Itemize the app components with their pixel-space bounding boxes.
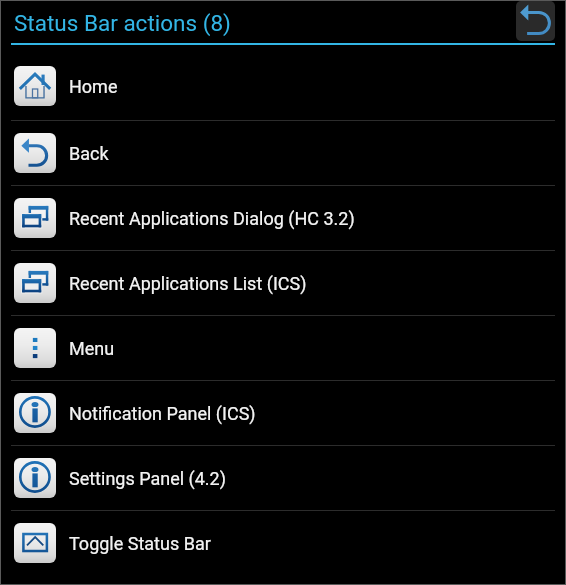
button[interactable]: Undo bbox=[516, 1, 555, 41]
staticText: Status Bar actions (8) bbox=[14, 10, 231, 36]
staticText: Home bbox=[69, 76, 118, 97]
staticText: Settings Panel (4.2) bbox=[69, 468, 226, 489]
button[interactable]: Notification Panel (ICS) bbox=[1, 381, 565, 445]
button[interactable]: Settings Panel (4.2) bbox=[1, 446, 565, 510]
staticText: Notification Panel (ICS) bbox=[69, 403, 256, 424]
button[interactable]: Home bbox=[1, 52, 565, 120]
button[interactable]: Recent Applications List (ICS) bbox=[1, 251, 565, 315]
button[interactable]: Menu bbox=[1, 316, 565, 380]
staticText: Menu bbox=[69, 338, 115, 359]
staticText: Toggle Status Bar bbox=[69, 533, 211, 554]
staticText: Recent Applications Dialog (HC 3.2) bbox=[69, 208, 355, 229]
button[interactable]: Toggle Status Bar bbox=[1, 511, 565, 575]
staticText: Recent Applications List (ICS) bbox=[69, 273, 307, 294]
button[interactable]: Back bbox=[1, 121, 565, 185]
button[interactable]: Recent Applications Dialog (HC 3.2) bbox=[1, 186, 565, 250]
staticText: Back bbox=[69, 143, 109, 164]
